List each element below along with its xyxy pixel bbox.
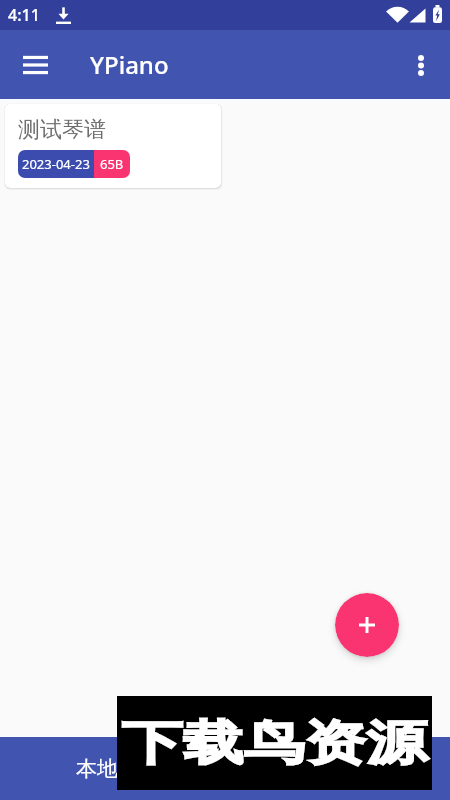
staticText: 在线琴谱 [301, 756, 385, 782]
staticText: 2023-04-23 [22, 155, 90, 173]
staticText: 65B [100, 155, 124, 173]
staticText: 下载鸟资源 [122, 714, 427, 773]
staticText: 4:11 [8, 4, 40, 26]
button[interactable]: Menu [11, 41, 59, 89]
staticText: 测试琴谱 [18, 116, 106, 144]
button[interactable]: More options [397, 41, 445, 89]
button[interactable]: 测试琴谱 [5, 104, 221, 188]
staticText: 本地琴谱 [76, 756, 160, 782]
staticText: YPiano [90, 48, 169, 81]
button[interactable]: Add [335, 593, 399, 657]
button[interactable]: 在线琴谱 [225, 737, 450, 800]
button[interactable]: 本地琴谱 [0, 737, 225, 800]
